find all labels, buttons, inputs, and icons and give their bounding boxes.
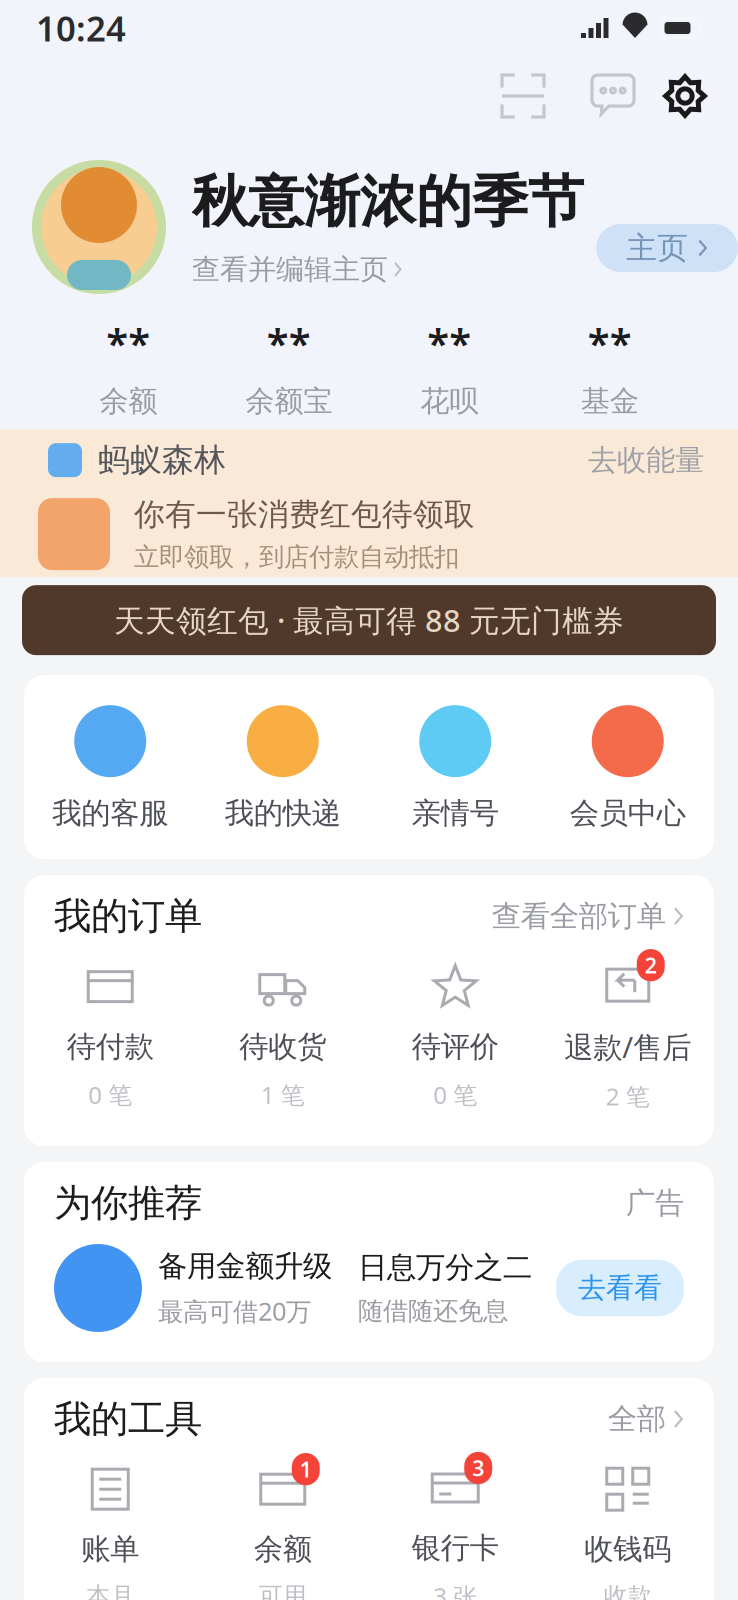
staticText: 广告 xyxy=(626,1185,684,1221)
staticText: 账单 xyxy=(81,1531,139,1567)
staticText: 2 笔 xyxy=(606,1080,650,1112)
staticText: 蚂蚁森林 xyxy=(98,440,226,480)
staticText: 收钱码 xyxy=(584,1531,671,1567)
staticText: 你有一张消费红包待领取 xyxy=(134,496,475,533)
button[interactable]: 待评价 xyxy=(369,959,541,1110)
staticText: 全部 xyxy=(608,1401,666,1437)
button[interactable]: 待收货 xyxy=(196,959,369,1110)
staticText: 3 xyxy=(472,1454,484,1482)
button[interactable]: 天天领红包 · 最高可得 88 元无门槛券 xyxy=(0,585,738,655)
staticText: 收款 xyxy=(604,1581,652,1600)
staticText: 待评价 xyxy=(412,1029,499,1065)
button[interactable]: 我的客服 xyxy=(24,705,196,831)
button[interactable]: Messages xyxy=(580,63,646,129)
staticText: 去收能量 xyxy=(588,442,704,478)
staticText: 随借随还免息 xyxy=(358,1295,508,1327)
button[interactable]: 待付款 xyxy=(24,959,196,1110)
staticText: ** xyxy=(427,316,471,369)
button[interactable]: 我的订单 xyxy=(24,875,714,957)
staticText: 立即领取，到店付款自动抵扣 xyxy=(134,541,459,572)
staticText: 待付款 xyxy=(67,1029,154,1065)
staticText: 1 xyxy=(300,1455,312,1483)
button[interactable]: Settings xyxy=(652,63,718,129)
staticText: ** xyxy=(588,316,632,369)
staticText: 为你推荐 xyxy=(54,1180,202,1226)
button[interactable]: 为你推荐 xyxy=(24,1162,714,1244)
button[interactable]: 2 xyxy=(541,957,714,1112)
button[interactable]: 主页 xyxy=(596,224,738,272)
button[interactable]: 备用金额升级 xyxy=(24,1244,714,1362)
staticText: 待收货 xyxy=(239,1029,326,1065)
staticText: 10:24 xyxy=(36,5,126,51)
button[interactable]: ** xyxy=(208,316,369,419)
staticText: 2 xyxy=(645,951,657,979)
button[interactable]: ** xyxy=(529,316,690,419)
button[interactable]: 查看并编辑主页 xyxy=(192,252,402,287)
staticText: 查看全部订单 xyxy=(492,898,666,934)
button[interactable]: 收钱码 xyxy=(541,1461,714,1600)
button[interactable]: 账单 xyxy=(24,1461,196,1600)
staticText: 余额宝 xyxy=(245,383,332,419)
staticText: 日息万分之二 xyxy=(358,1249,532,1285)
button[interactable]: 我的快递 xyxy=(196,705,369,831)
staticText: 我的客服 xyxy=(52,795,168,831)
staticText: 银行卡 xyxy=(412,1530,499,1566)
staticText: ** xyxy=(106,316,150,369)
staticText: 亲情号 xyxy=(412,795,499,831)
staticText: 本月 xyxy=(86,1581,134,1600)
button[interactable]: 秋意渐浓的季节 xyxy=(192,167,584,236)
staticText: 秋意渐浓的季节 xyxy=(192,167,584,236)
staticText: 去看看 xyxy=(578,1271,662,1305)
staticText: 主页 xyxy=(626,229,688,267)
button[interactable]: ** xyxy=(369,316,529,419)
button[interactable]: 你有一张消费红包待领取 xyxy=(0,491,738,577)
staticText: 我的订单 xyxy=(54,893,202,939)
staticText: ** xyxy=(267,316,311,369)
staticText: 我的工具 xyxy=(54,1396,202,1442)
button[interactable]: 我的工具 xyxy=(24,1378,714,1460)
staticText: 花呗 xyxy=(420,383,478,419)
button[interactable]: 亲情号 xyxy=(369,705,541,831)
staticText: 我的快递 xyxy=(225,795,341,831)
staticText: 1 笔 xyxy=(261,1079,305,1111)
button[interactable]: Profile photo xyxy=(32,160,166,294)
staticText: 3 张 xyxy=(433,1580,477,1600)
staticText: 0 笔 xyxy=(88,1079,132,1111)
staticText: 会员中心 xyxy=(570,795,686,831)
staticText: 0 笔 xyxy=(433,1079,477,1111)
button[interactable]: Scan xyxy=(490,63,556,129)
button[interactable]: 3 xyxy=(369,1460,541,1600)
staticText: 最高可借20万 xyxy=(158,1294,311,1328)
staticText: 基金 xyxy=(581,383,639,419)
staticText: 备用金额升级 xyxy=(158,1248,332,1284)
button[interactable]: 会员中心 xyxy=(541,705,714,831)
staticText: 天天领红包 · 最高可得 88 元无门槛券 xyxy=(114,600,624,640)
staticText: 余额 xyxy=(99,383,157,419)
button[interactable]: ** xyxy=(48,316,208,419)
staticText: 可用 xyxy=(259,1581,307,1600)
staticText: 余额 xyxy=(254,1531,312,1567)
staticText: 退款/售后 xyxy=(564,1027,691,1066)
button[interactable]: 蚂蚁森林 xyxy=(0,429,738,491)
button[interactable]: 1 xyxy=(196,1461,369,1600)
staticText: 查看并编辑主页 xyxy=(192,252,388,287)
